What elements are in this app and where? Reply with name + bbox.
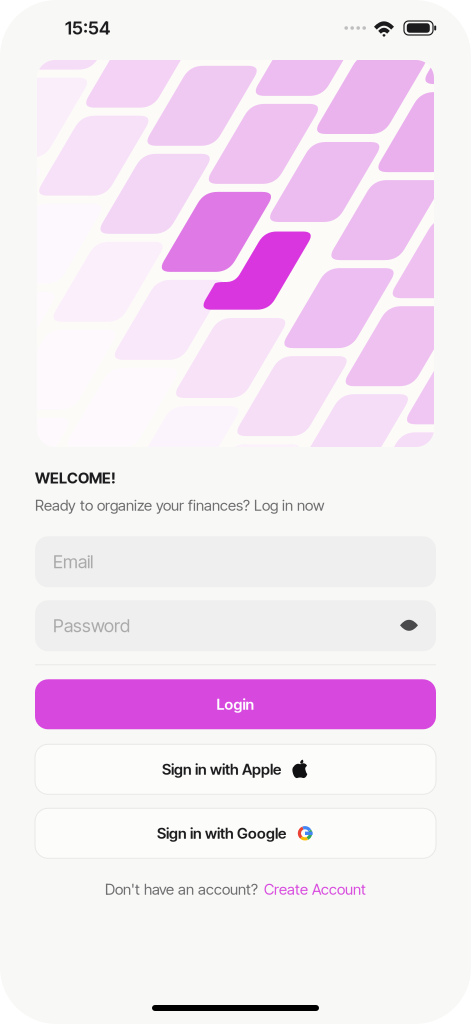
- staticText: Email: [53, 551, 93, 573]
- staticText: Ready to organize your finances? Log in …: [35, 496, 324, 514]
- staticText: Create Account: [264, 880, 366, 898]
- button[interactable]: Create Account: [264, 880, 366, 898]
- staticText: Don't have an account?: [105, 880, 258, 898]
- staticText: 15:54: [65, 17, 110, 39]
- staticText: Login: [216, 695, 254, 713]
- staticText: Sign in with Apple: [162, 760, 281, 778]
- button[interactable]: Sign in with Google: [35, 808, 436, 858]
- staticText: Sign in with Google: [157, 824, 286, 842]
- staticText: Password: [53, 615, 130, 637]
- button[interactable]: Show password: [400, 617, 418, 634]
- staticText: WELCOME!: [35, 469, 116, 487]
- button[interactable]: Sign in with Apple: [35, 744, 436, 794]
- button[interactable]: Login: [35, 679, 436, 729]
